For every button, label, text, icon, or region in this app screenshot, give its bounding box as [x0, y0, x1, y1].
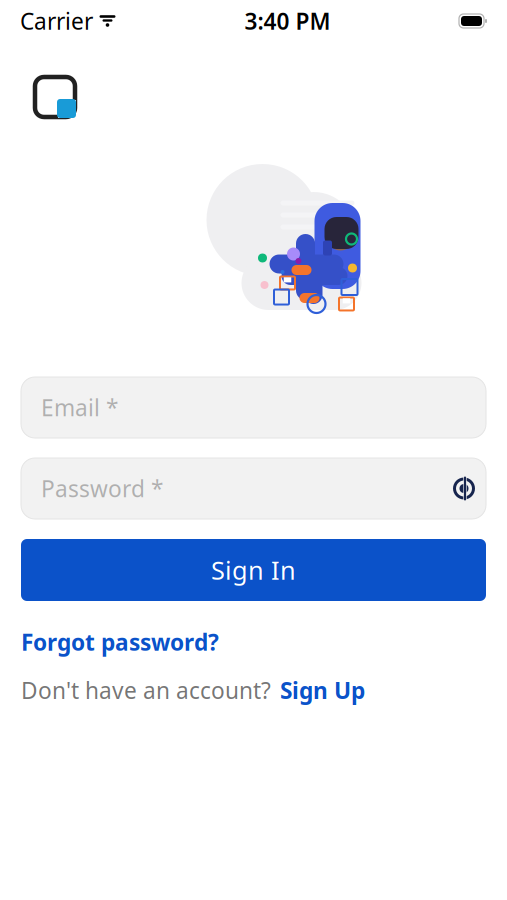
staticText: Don't have an account?	[21, 675, 271, 705]
staticText: Sign Up	[280, 675, 365, 705]
staticText: Email *	[41, 392, 118, 422]
staticText: 3:40 PM	[244, 6, 330, 36]
staticText: Sign In	[211, 553, 296, 587]
staticText: Password *	[41, 473, 163, 503]
button[interactable]: Sign Up	[280, 675, 365, 705]
button[interactable]: Sign In	[21, 539, 486, 601]
staticText: Forgot password?	[21, 627, 219, 657]
button[interactable]: Forgot password?	[21, 627, 219, 657]
button[interactable]: Show password	[442, 466, 486, 510]
staticText: Carrier	[20, 6, 93, 36]
